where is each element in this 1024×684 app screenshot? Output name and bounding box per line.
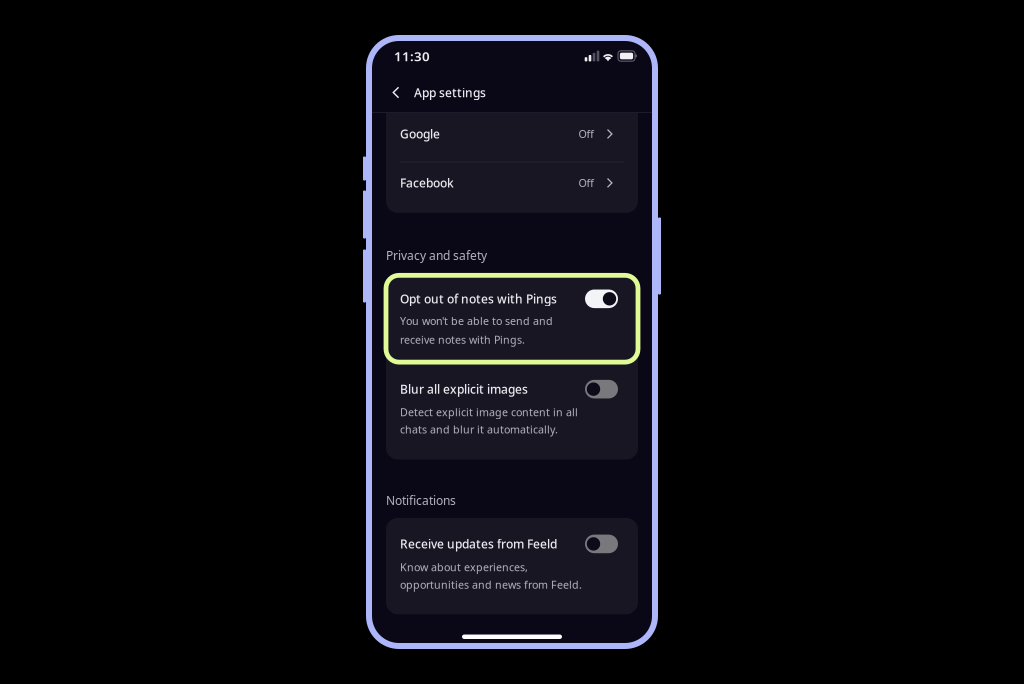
- button[interactable]: Back: [384, 77, 408, 107]
- staticText: You won't be able to send and: [400, 314, 553, 328]
- staticText: App settings: [414, 84, 486, 100]
- button[interactable]: Facebook: [386, 162, 638, 213]
- button[interactable]: Opt out of notes with Pings: [386, 275, 638, 362]
- staticText: 11:30: [394, 47, 430, 65]
- staticText: Know about experiences,: [400, 560, 528, 574]
- staticText: chats and blur it automatically.: [400, 422, 558, 436]
- staticText: Notifications: [386, 492, 456, 508]
- button[interactable]: Google: [386, 113, 638, 161]
- button[interactable]: Receive updates from Feeld: [386, 518, 638, 614]
- staticText: Off: [578, 176, 593, 190]
- staticText: Detect explicit image content in all: [400, 405, 578, 419]
- staticText: Facebook: [400, 175, 454, 191]
- staticText: receive notes with Pings.: [400, 332, 525, 347]
- staticText: Off: [578, 127, 593, 141]
- staticText: Blur all explicit images: [400, 381, 528, 397]
- button[interactable]: Blur all explicit images: [386, 362, 638, 459]
- staticText: Receive updates from Feeld: [400, 536, 557, 552]
- staticText: Privacy and safety: [386, 247, 487, 263]
- staticText: Google: [400, 126, 440, 142]
- staticText: opportunities and news from Feeld.: [400, 578, 582, 592]
- staticText: Opt out of notes with Pings: [400, 291, 557, 307]
